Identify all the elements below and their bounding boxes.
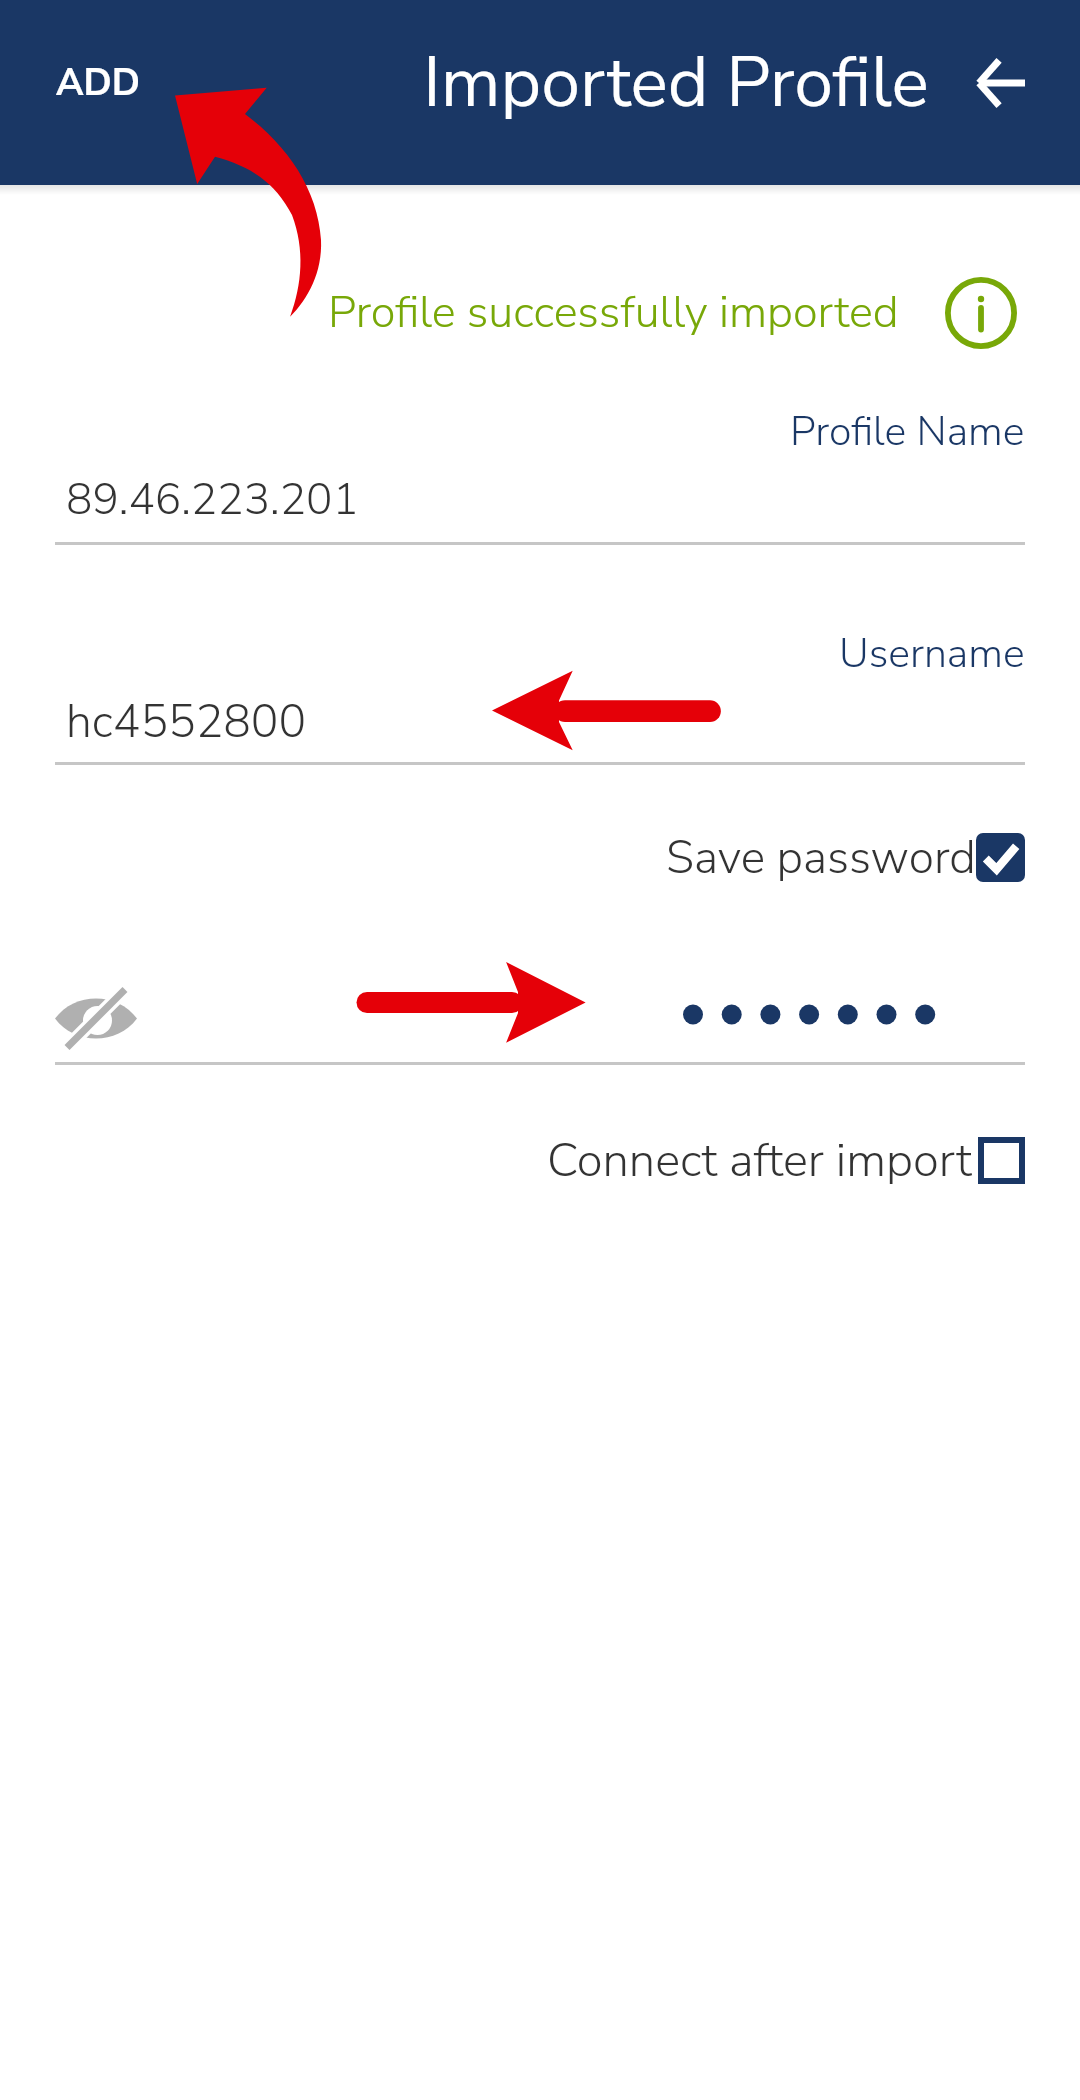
staticText: Imported Profile — [423, 35, 929, 130]
button[interactable] — [0, 612, 1080, 765]
button[interactable]: Info — [945, 277, 1017, 349]
button[interactable]: Connect after import — [0, 1128, 1025, 1192]
staticText: Username — [839, 626, 1025, 682]
button[interactable]: Show password — [45, 979, 147, 1059]
staticText: hc4552800 — [66, 690, 307, 753]
staticText: ADD — [56, 58, 140, 108]
staticText: Profile successfully imported — [328, 282, 899, 343]
button[interactable]: Back — [977, 59, 1025, 107]
staticText: Save password — [666, 826, 976, 889]
button[interactable] — [0, 390, 1080, 545]
button[interactable]: ADD — [40, 48, 156, 118]
button[interactable]: Password — [160, 965, 1025, 1060]
staticText: 89.46.223.201 — [66, 470, 359, 530]
staticText: Connect after import — [547, 1128, 972, 1192]
staticText: Profile Name — [790, 404, 1025, 460]
button[interactable]: Save password — [0, 826, 1025, 889]
